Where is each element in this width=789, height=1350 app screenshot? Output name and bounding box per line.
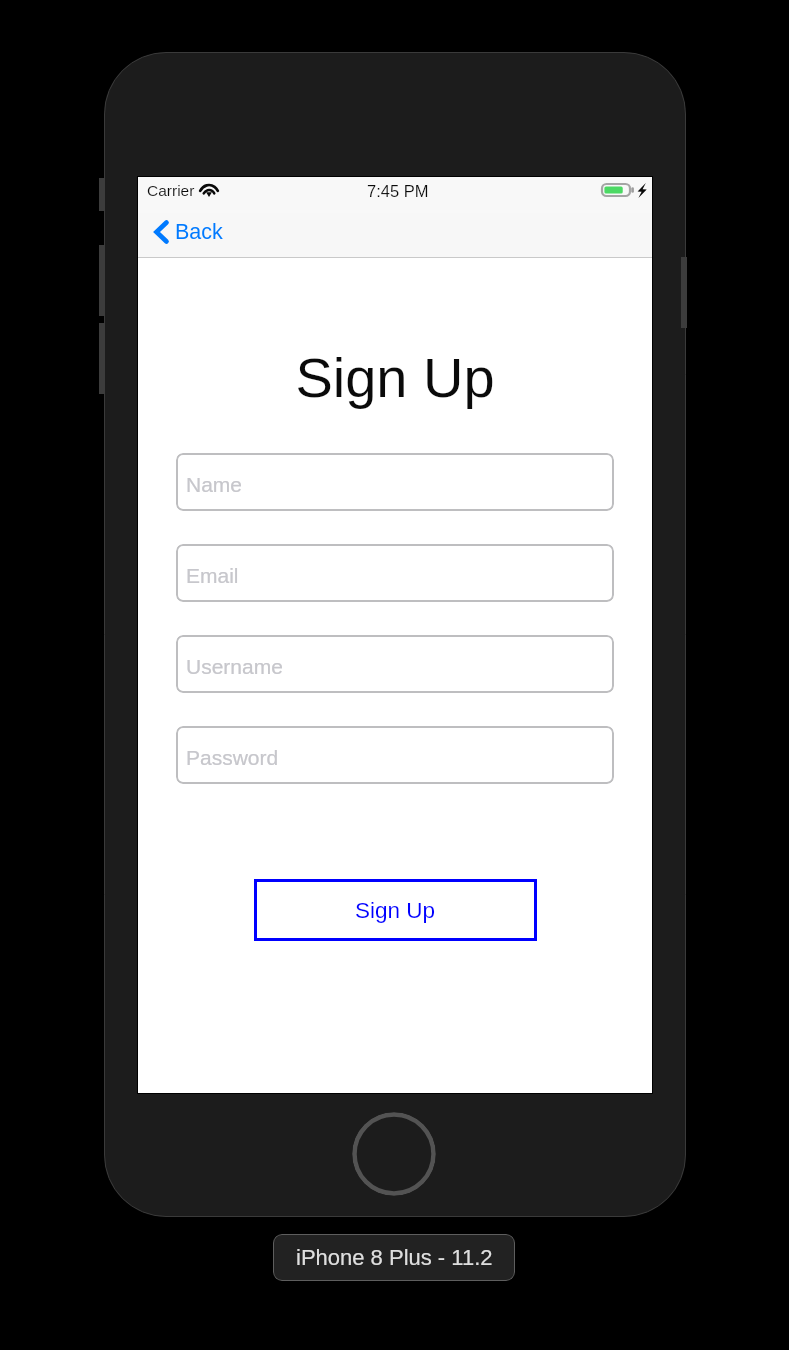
button[interactable]: Back bbox=[146, 214, 231, 250]
button[interactable]: Password bbox=[176, 726, 614, 784]
staticText: Username bbox=[186, 655, 283, 678]
staticText: Password bbox=[186, 746, 279, 769]
button[interactable]: Home bbox=[352, 1112, 436, 1196]
staticText: 7:45 PM bbox=[367, 182, 429, 200]
button[interactable]: Sign Up bbox=[254, 879, 537, 941]
staticText: Sign Up bbox=[138, 346, 652, 409]
staticText: Email bbox=[186, 564, 239, 587]
staticText: Back bbox=[175, 220, 223, 244]
button[interactable]: Username bbox=[176, 635, 614, 693]
button[interactable]: Name bbox=[176, 453, 614, 511]
staticText: Name bbox=[186, 473, 243, 496]
staticText: Carrier bbox=[147, 182, 195, 199]
staticText: iPhone 8 Plus - 11.2 bbox=[296, 1245, 493, 1270]
button[interactable]: Email bbox=[176, 544, 614, 602]
staticText: Sign Up bbox=[355, 898, 436, 923]
